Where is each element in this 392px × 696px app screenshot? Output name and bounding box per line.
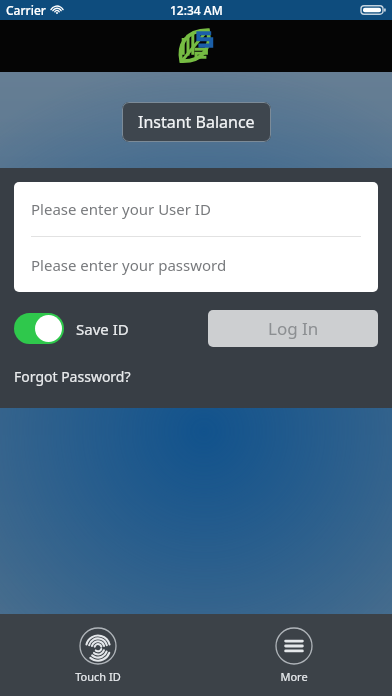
staticText: Carrier <box>6 2 46 18</box>
button[interactable]: Please enter your password <box>14 237 378 292</box>
staticText: 12:34 AM <box>170 2 223 18</box>
staticText: Touch ID <box>75 669 121 684</box>
staticText: Please enter your User ID <box>31 199 211 219</box>
staticText: Log In <box>268 317 319 340</box>
staticText: Forgot Password? <box>14 367 131 386</box>
button[interactable]: Forgot Password? <box>14 367 131 386</box>
button[interactable]: Touch ID <box>71 623 125 688</box>
staticText: More <box>280 669 308 684</box>
button[interactable]: Log In <box>208 310 378 347</box>
staticText: Save ID <box>76 319 129 339</box>
button[interactable]: Save ID <box>14 313 129 344</box>
staticText: Instant Balance <box>138 111 255 133</box>
other: Logo <box>176 26 216 66</box>
button[interactable]: Instant Balance <box>122 102 271 142</box>
staticText: Please enter your password <box>31 255 227 275</box>
button[interactable]: More <box>271 623 317 688</box>
button[interactable]: Please enter your User ID <box>14 182 378 236</box>
